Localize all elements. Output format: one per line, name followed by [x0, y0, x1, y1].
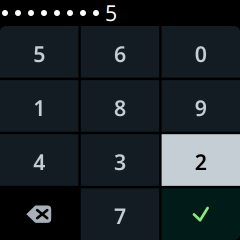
button[interactable]: 3 [81, 134, 159, 186]
staticText: 1 [33, 94, 45, 122]
button[interactable]: 2 [162, 134, 240, 186]
staticText: 2 [195, 148, 207, 176]
staticText: 6 [114, 40, 126, 68]
button[interactable]: 6 [81, 26, 159, 78]
staticText: 9 [195, 94, 207, 122]
staticText: 5 [105, 0, 117, 27]
button[interactable]: 9 [162, 80, 240, 132]
button[interactable]: 1 [0, 80, 78, 132]
button[interactable]: 7 [81, 188, 159, 240]
staticText: 8 [114, 94, 126, 122]
button[interactable]: Confirm [162, 188, 240, 240]
staticText: 4 [33, 148, 45, 176]
staticText: 0 [195, 40, 207, 68]
button[interactable]: 0 [162, 26, 240, 78]
staticText: 3 [114, 148, 126, 176]
button[interactable]: 4 [0, 134, 78, 186]
button[interactable]: 5 [0, 26, 78, 78]
button[interactable]: 8 [81, 80, 159, 132]
staticText: 7 [114, 202, 126, 230]
button[interactable]: Delete [0, 188, 78, 240]
staticText: 5 [33, 40, 45, 68]
